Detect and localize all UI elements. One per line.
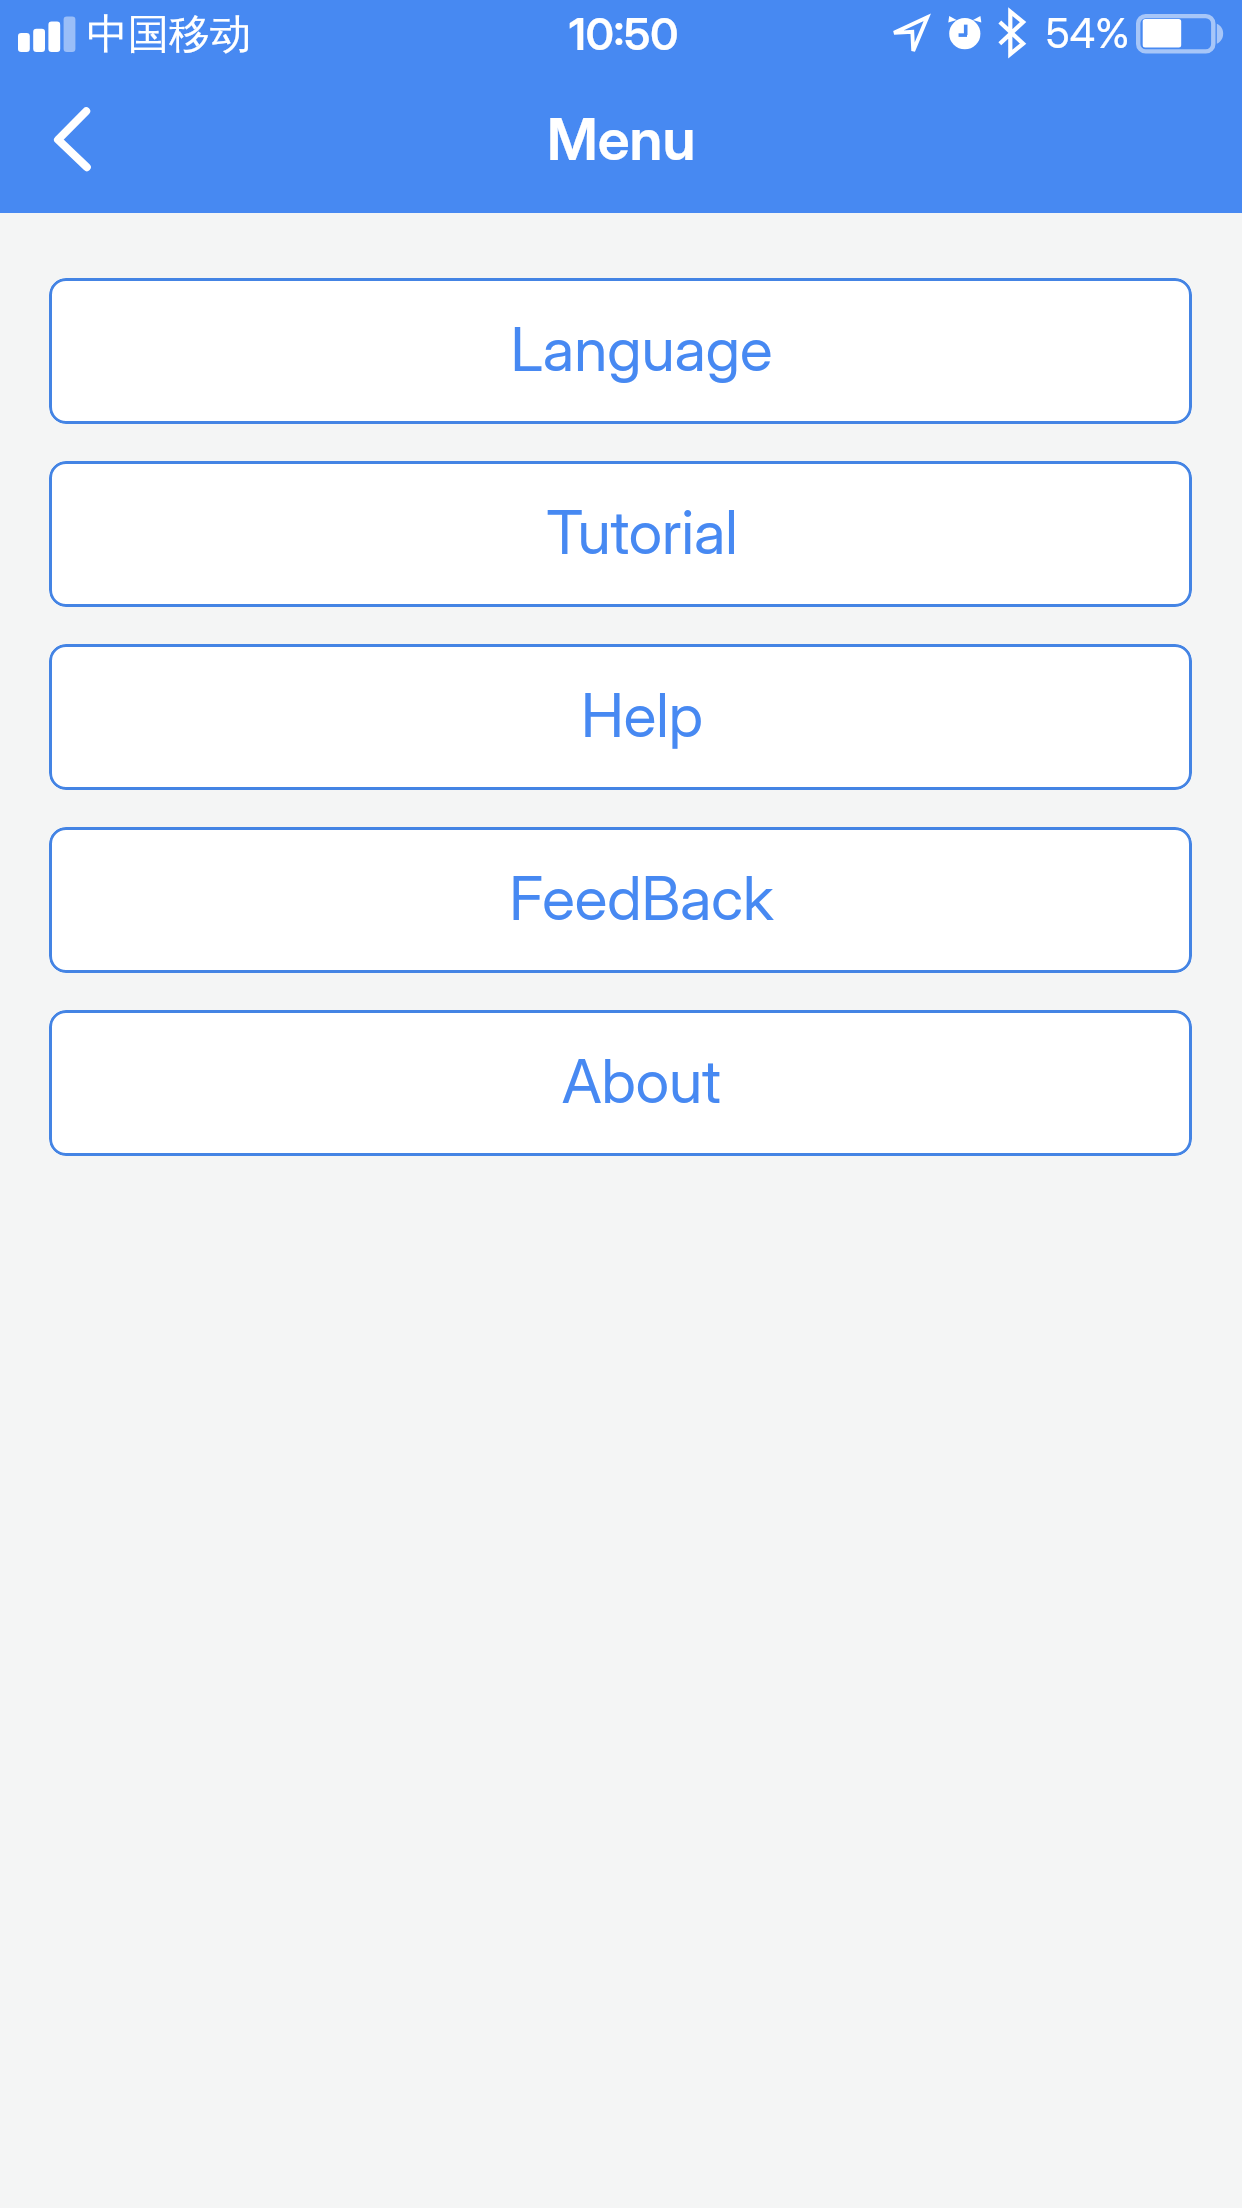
button[interactable]: Tutorial [49, 461, 1192, 607]
button[interactable]: Back [24, 94, 120, 186]
staticText: FeedBack [509, 861, 774, 934]
button[interactable]: FeedBack [49, 827, 1192, 973]
button[interactable]: Language [49, 278, 1192, 424]
staticText: Help [581, 678, 703, 751]
button[interactable]: Help [49, 644, 1192, 790]
staticText: 10:50 [569, 7, 679, 60]
staticText: Language [510, 312, 773, 385]
staticText: About [562, 1044, 721, 1117]
staticText: Tutorial [546, 495, 738, 568]
staticText: 54% [1046, 8, 1130, 58]
button[interactable]: About [49, 1010, 1192, 1156]
staticText: Menu [547, 104, 696, 174]
staticText: 中国移动 [87, 9, 251, 61]
